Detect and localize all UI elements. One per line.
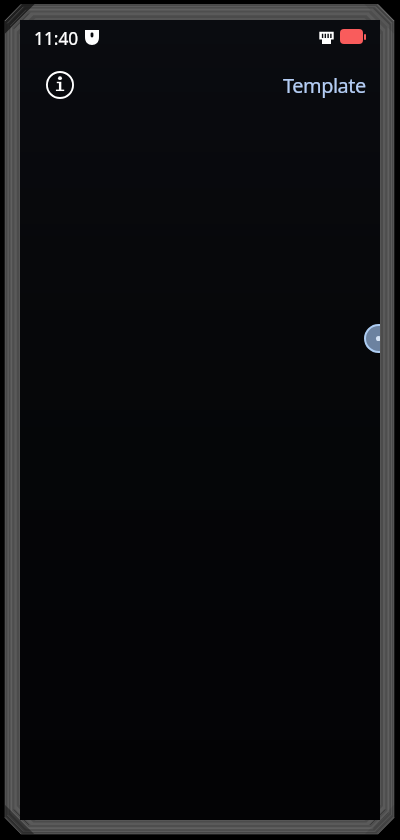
staticText: Template — [283, 72, 366, 99]
button[interactable]: Template — [277, 66, 372, 105]
staticText: 11:40 — [34, 27, 79, 51]
button[interactable]: Drag handle — [364, 324, 380, 353]
button[interactable]: Info — [38, 63, 82, 107]
